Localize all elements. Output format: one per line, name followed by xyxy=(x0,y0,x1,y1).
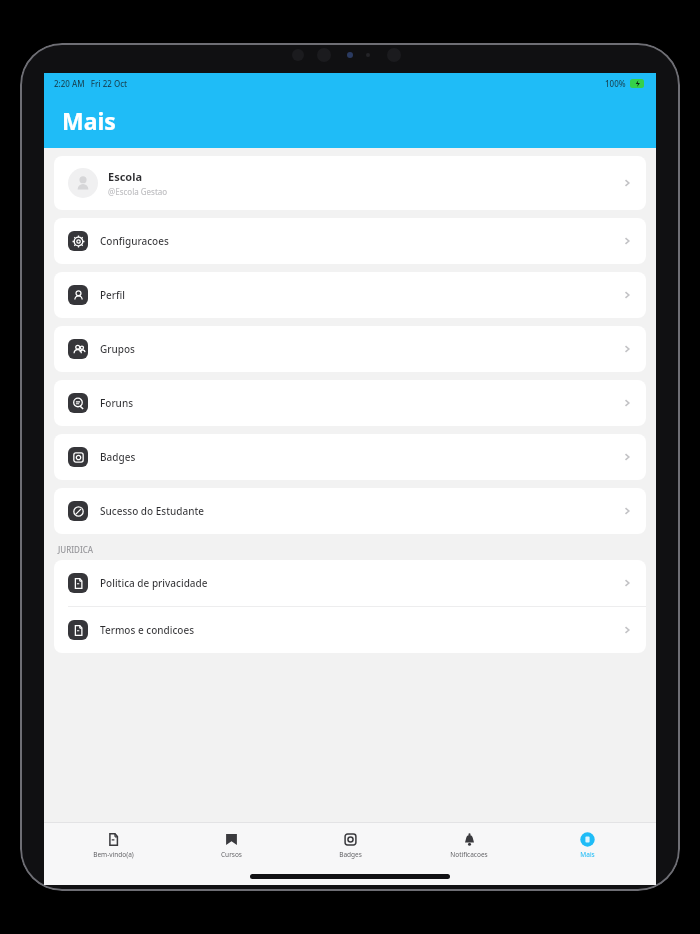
staticText: Badges xyxy=(100,450,136,464)
staticText: Politica de privacidade xyxy=(100,576,208,590)
button[interactable]: Configuracoes xyxy=(54,218,646,264)
button[interactable]: Cursos xyxy=(181,823,281,867)
button[interactable]: Badges xyxy=(54,434,646,480)
staticText: Perfil xyxy=(100,288,126,302)
button[interactable]: Perfil xyxy=(54,272,646,318)
button[interactable]: Foruns xyxy=(54,380,646,426)
button[interactable]: Grupos xyxy=(54,326,646,372)
button[interactable]: Termos e condicoes xyxy=(54,607,646,653)
button[interactable]: Escola xyxy=(54,156,646,210)
staticText: @Escola Gestao xyxy=(108,186,168,197)
staticText: Escola xyxy=(108,169,143,184)
button[interactable]: Politica de privacidade xyxy=(54,560,646,606)
staticText: 100% xyxy=(605,78,626,89)
staticText: Sucesso do Estudante xyxy=(100,504,205,518)
staticText: Cursos xyxy=(221,850,242,859)
staticText: Bem-vindo(a) xyxy=(93,850,134,859)
staticText: Badges xyxy=(339,850,362,859)
staticText: Mais xyxy=(62,105,116,136)
staticText: Grupos xyxy=(100,342,135,356)
button[interactable]: Notificacoes xyxy=(419,823,519,867)
staticText: Notificacoes xyxy=(450,850,488,859)
staticText: Mais xyxy=(580,850,595,859)
button[interactable]: Mais xyxy=(537,823,637,867)
button[interactable]: Sucesso do Estudante xyxy=(54,488,646,534)
button[interactable]: Bem-vindo(a) xyxy=(63,823,163,867)
staticText: 2:20 AM Fri 22 Oct xyxy=(54,78,128,89)
staticText: Configuracoes xyxy=(100,234,169,248)
staticText: JURIDICA xyxy=(58,544,94,555)
staticText: Termos e condicoes xyxy=(100,623,195,637)
button[interactable]: Badges xyxy=(300,823,400,867)
staticText: Foruns xyxy=(100,396,134,410)
